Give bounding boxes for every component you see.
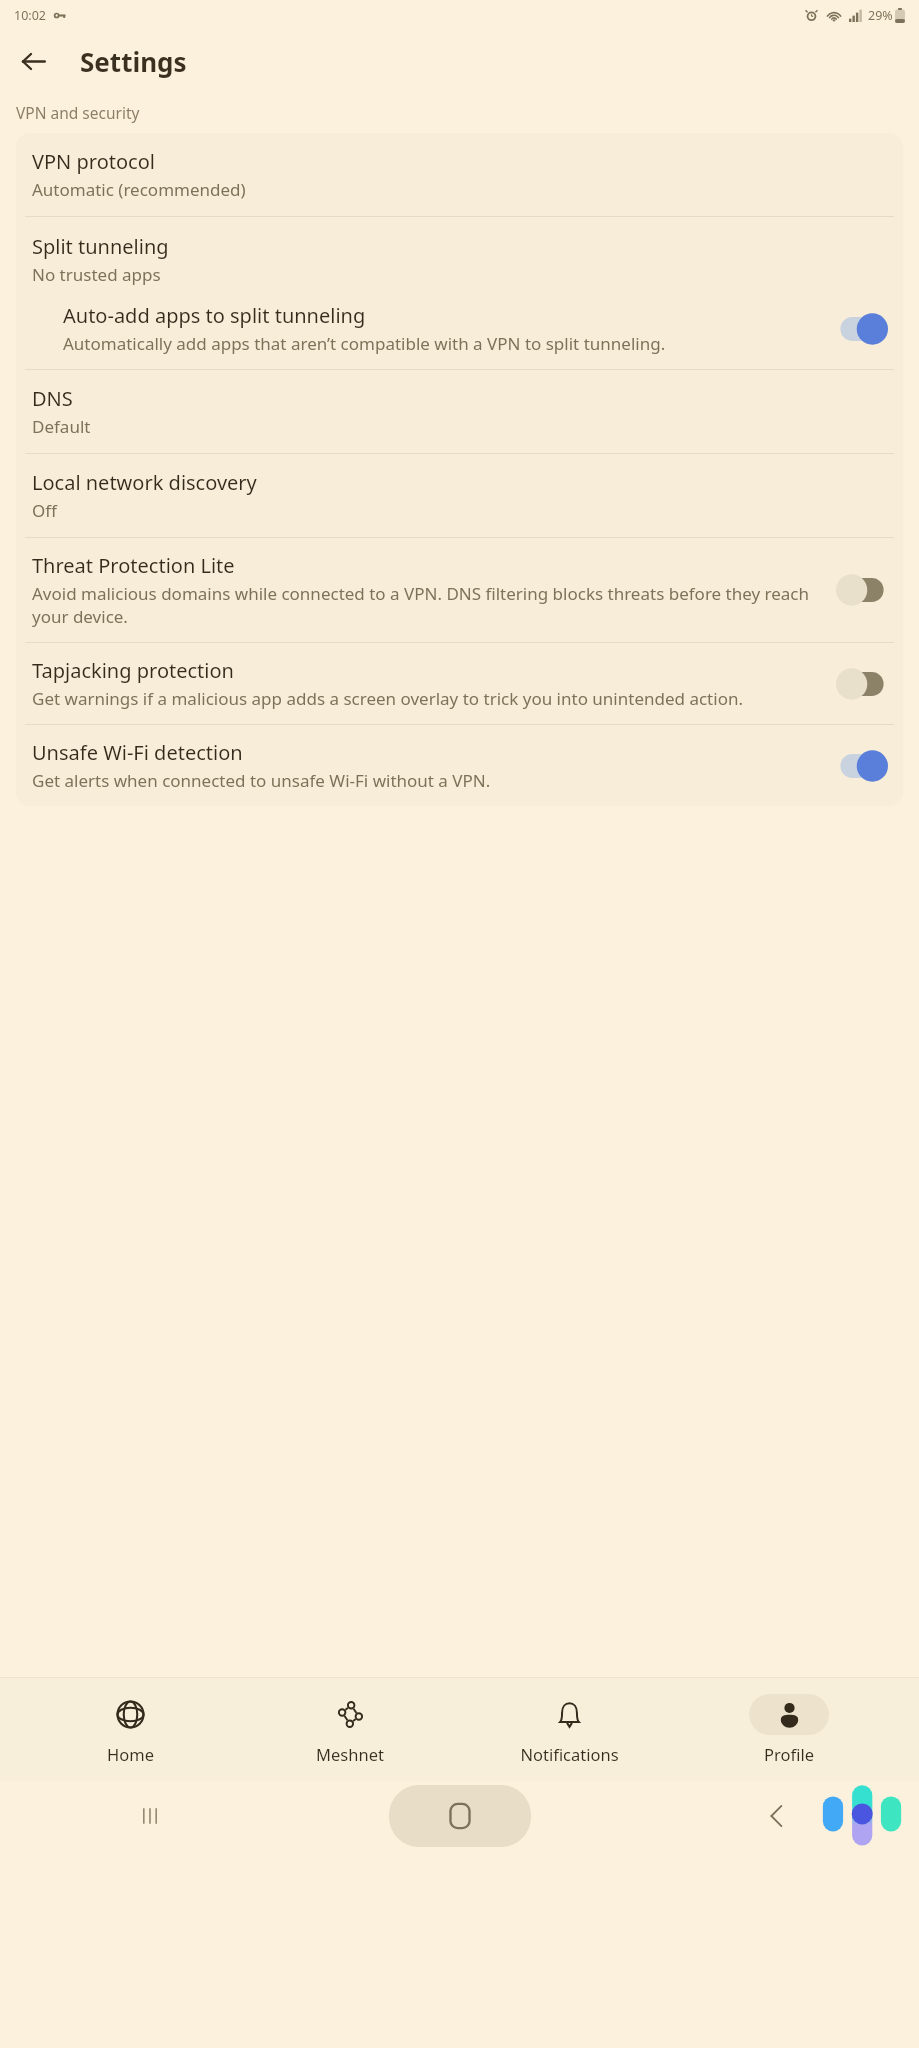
staticText: Threat Protection Lite [32, 552, 235, 579]
button[interactable]: Local network discovery [16, 454, 903, 537]
button[interactable]: On [835, 749, 889, 783]
staticText: 10:02 [14, 7, 46, 24]
staticText: Automatic (recommended) [32, 178, 246, 201]
staticText: VPN and security [16, 102, 140, 123]
staticText: Get warnings if a malicious app adds a s… [32, 687, 743, 710]
button[interactable]: Split tunneling [16, 217, 903, 292]
staticText: Avoid malicious domains while connected … [32, 582, 825, 628]
button[interactable]: Profile [699, 1690, 879, 1769]
staticText: Off [32, 499, 57, 522]
staticText: Unsafe Wi-Fi detection [32, 739, 243, 766]
button[interactable]: Meshnet [260, 1690, 440, 1769]
button[interactable]: Tapjacking protection [16, 643, 903, 724]
staticText: Home [107, 1743, 154, 1765]
button[interactable]: DNS [16, 370, 903, 453]
staticText: Tapjacking protection [32, 657, 234, 684]
button[interactable]: Recent apps [128, 1794, 172, 1838]
staticText: DNS [32, 385, 73, 412]
button[interactable]: Auto-add apps to split tunneling [16, 292, 903, 369]
staticText: Default [32, 415, 91, 438]
button[interactable]: Off [835, 667, 889, 701]
staticText: Meshnet [316, 1743, 384, 1765]
button[interactable]: Notifications [479, 1690, 659, 1769]
button[interactable]: Threat Protection Lite [16, 538, 903, 642]
button[interactable]: Home [40, 1690, 220, 1769]
button[interactable]: Back [8, 36, 58, 86]
staticText: Get alerts when connected to unsafe Wi-F… [32, 769, 491, 792]
staticText: Profile [764, 1743, 814, 1765]
button[interactable]: VPN protocol [16, 133, 903, 216]
button[interactable]: Unsafe Wi-Fi detection [16, 725, 903, 806]
button[interactable]: Home [389, 1785, 531, 1847]
staticText: VPN protocol [32, 148, 155, 175]
button[interactable]: Back [755, 1794, 799, 1838]
button[interactable]: Off [835, 573, 889, 607]
staticText: 29% [868, 7, 893, 24]
staticText: Local network discovery [32, 469, 257, 496]
button[interactable]: On [835, 312, 889, 346]
staticText: No trusted apps [32, 263, 161, 286]
staticText: Automatically add apps that aren’t compa… [63, 332, 666, 355]
staticText: Auto-add apps to split tunneling [63, 302, 366, 329]
staticText: Settings [80, 44, 187, 79]
staticText: Notifications [520, 1743, 619, 1765]
staticText: Split tunneling [32, 233, 169, 260]
